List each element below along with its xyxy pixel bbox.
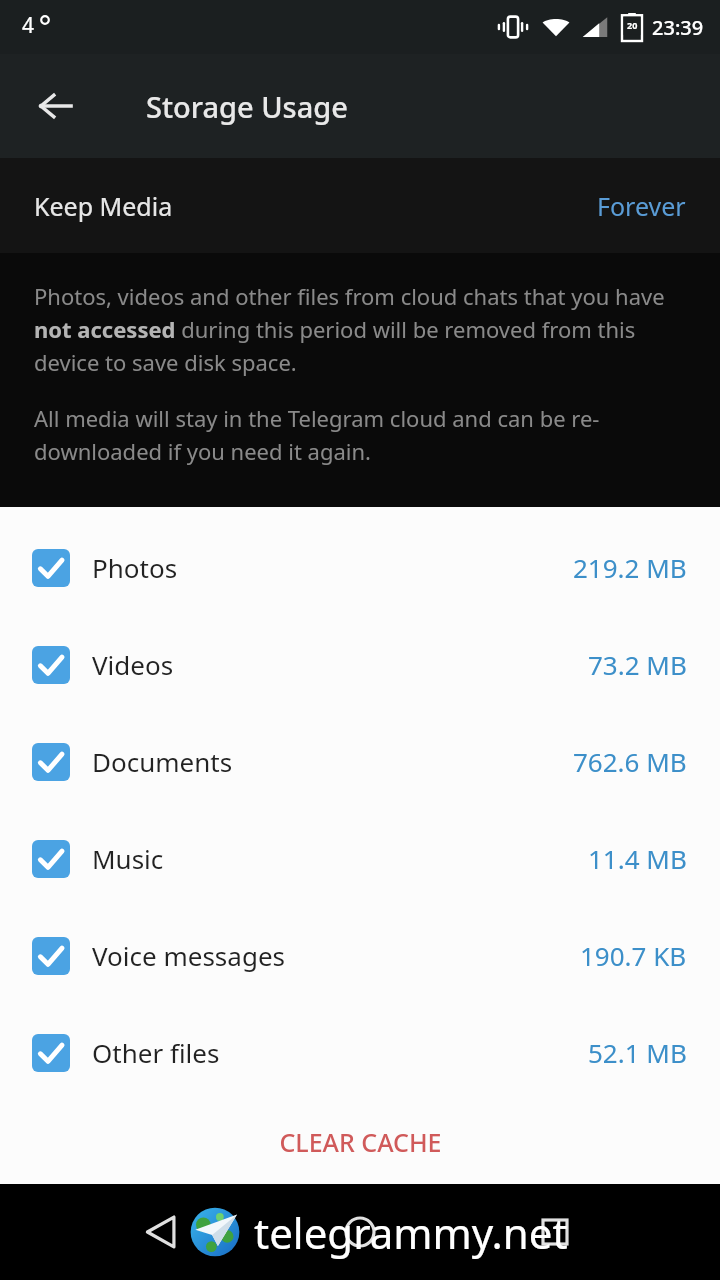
button[interactable]: Back	[128, 1199, 194, 1265]
other: Checked	[32, 743, 70, 781]
button[interactable]: Back	[14, 64, 98, 148]
button[interactable]: Home	[327, 1199, 393, 1265]
staticText: Voice messages	[92, 938, 285, 973]
other: Checked	[32, 549, 70, 587]
staticText: Photos	[92, 550, 178, 585]
staticText: Other files	[92, 1035, 220, 1070]
staticText: Keep Media	[34, 189, 173, 223]
button[interactable]: Checked	[0, 907, 720, 1004]
staticText: 73.2 MB	[588, 647, 687, 682]
button[interactable]: Keep Media	[0, 158, 720, 253]
staticText: Forever	[597, 189, 686, 223]
button[interactable]: Checked	[0, 616, 720, 713]
staticText: 190.7 KB	[580, 938, 687, 973]
other: Checked	[32, 840, 70, 878]
button[interactable]: Checked	[0, 519, 720, 616]
staticText: 52.1 MB	[588, 1035, 687, 1070]
staticText: Photos, videos and other files from clou…	[34, 281, 690, 377]
staticText: Videos	[92, 647, 174, 682]
staticText: 20	[627, 19, 638, 31]
staticText: 4	[22, 11, 35, 40]
staticText: Storage Usage	[146, 87, 348, 126]
other: Checked	[32, 646, 70, 684]
staticText: Documents	[92, 744, 233, 779]
staticText: telegrammy.net	[254, 1204, 568, 1261]
staticText: 762.6 MB	[573, 744, 687, 779]
other: Checked	[32, 1034, 70, 1072]
staticText: 23:39	[652, 14, 704, 41]
staticText: Music	[92, 841, 164, 876]
other: Checked	[32, 937, 70, 975]
staticText: 219.2 MB	[573, 550, 687, 585]
button[interactable]: Checked	[0, 713, 720, 810]
button[interactable]: Recent apps	[522, 1199, 588, 1265]
staticText: All media will stay in the Telegram clou…	[34, 403, 690, 466]
button[interactable]: CLEAR CACHE	[255, 1111, 466, 1173]
button[interactable]: Checked	[0, 1004, 720, 1101]
staticText: CLEAR CACHE	[279, 1125, 442, 1159]
button[interactable]: Checked	[0, 810, 720, 907]
staticText: 11.4 MB	[588, 841, 687, 876]
